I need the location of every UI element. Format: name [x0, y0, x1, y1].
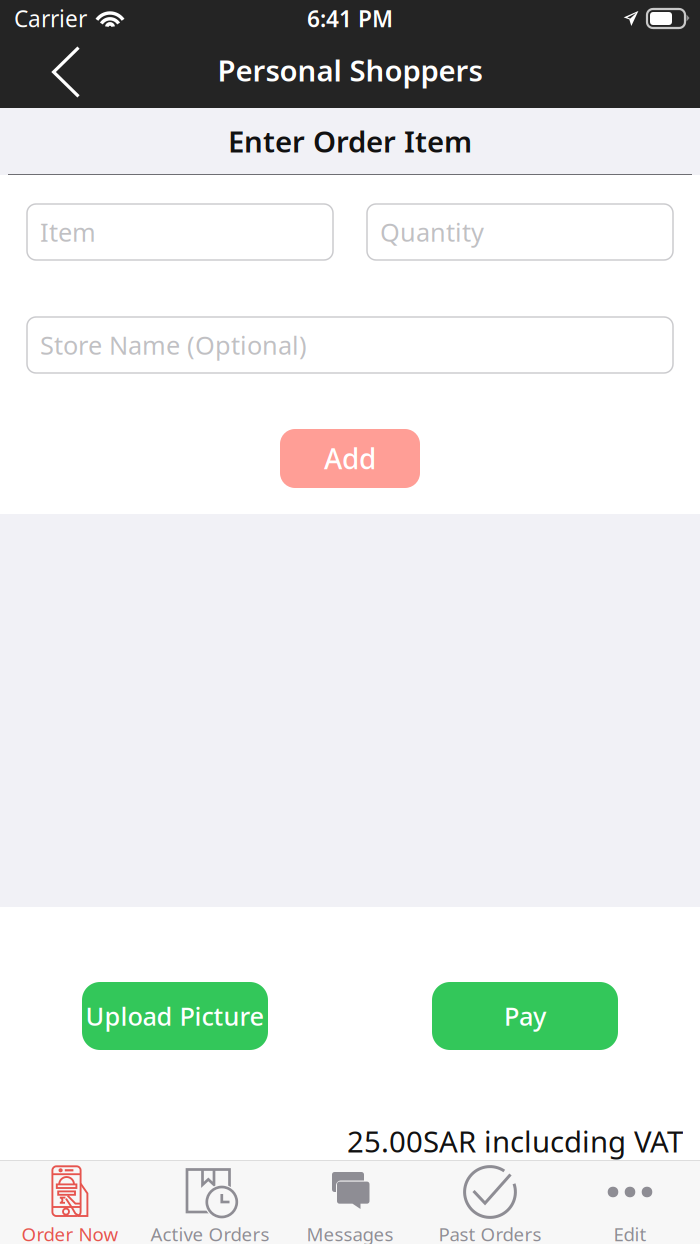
button[interactable]: Store Name (Optional)	[27, 317, 673, 373]
staticText: Carrier	[14, 3, 87, 33]
button[interactable]: Add	[280, 429, 420, 488]
button[interactable]: Edit	[560, 1160, 700, 1244]
staticText: Personal Shoppers	[217, 50, 482, 89]
staticText: Store Name (Optional)	[40, 328, 307, 362]
staticText: 6:41 PM	[307, 3, 393, 33]
staticText: Order Now	[21, 1222, 118, 1244]
staticText: Pay	[504, 999, 546, 1033]
button[interactable]: Pay	[432, 982, 618, 1050]
staticText: Upload Picture	[85, 999, 264, 1033]
button[interactable]: Order Now	[0, 1160, 140, 1244]
staticText: 25.00SAR inclucding VAT	[347, 1121, 683, 1160]
button[interactable]: Past Orders	[420, 1160, 560, 1244]
staticText: Quantity	[380, 215, 484, 249]
staticText: Messages	[306, 1222, 393, 1244]
staticText: Enter Order Item	[228, 121, 472, 160]
button[interactable]: Messages	[280, 1160, 420, 1244]
button[interactable]: Active Orders	[140, 1160, 280, 1244]
staticText: Past Orders	[438, 1222, 541, 1244]
button[interactable]: Quantity	[367, 204, 673, 260]
button[interactable]: Back	[24, 41, 108, 103]
staticText: Add	[324, 440, 376, 477]
staticText: Active Orders	[150, 1222, 269, 1244]
button[interactable]: Upload Picture	[82, 982, 268, 1050]
staticText: Edit	[613, 1222, 646, 1244]
staticText: Item	[40, 215, 96, 249]
button[interactable]: Item	[27, 204, 333, 260]
